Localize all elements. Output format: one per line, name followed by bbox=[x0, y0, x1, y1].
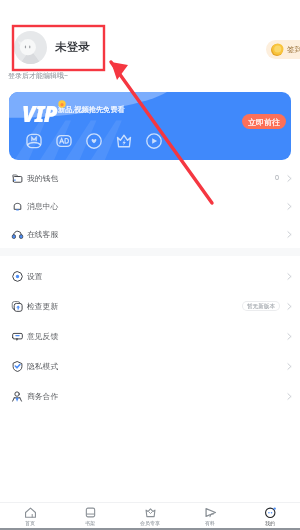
staticText: 我的钱包 bbox=[27, 173, 59, 183]
button[interactable]: 签到 bbox=[266, 40, 300, 59]
staticText: 设置 bbox=[27, 271, 43, 281]
staticText: 消息中心 bbox=[27, 201, 59, 211]
button[interactable]: VIP bbox=[9, 92, 291, 160]
button[interactable]: 立即前往 bbox=[242, 114, 286, 129]
staticText: 首页 bbox=[25, 520, 35, 526]
button[interactable]: 有料 bbox=[180, 503, 240, 528]
staticText: 暂无新版本 bbox=[247, 303, 275, 310]
button[interactable]: VIP benefit 4 bbox=[145, 132, 163, 150]
button[interactable]: 书架 bbox=[60, 503, 120, 528]
button[interactable]: VIP benefit 2 bbox=[85, 132, 103, 150]
staticText: 立即前往 bbox=[248, 117, 280, 127]
staticText: 登录后才能编辑哦~ bbox=[8, 71, 69, 81]
staticText: 检查更新 bbox=[27, 301, 59, 311]
staticText: VIP bbox=[22, 98, 57, 128]
staticText: 新品,视频抢先免费看 bbox=[58, 104, 125, 114]
staticText: 在线客服 bbox=[27, 229, 59, 239]
button[interactable]: 隐私模式 bbox=[0, 351, 300, 381]
staticText: 隐私模式 bbox=[27, 361, 59, 371]
button[interactable]: 在线客服 bbox=[0, 220, 300, 248]
button[interactable]: 设置 bbox=[0, 261, 300, 291]
button[interactable]: VIP benefit 1 bbox=[55, 132, 73, 150]
button[interactable]: 我的 bbox=[240, 503, 300, 528]
button[interactable]: 消息中心 bbox=[0, 192, 300, 220]
staticText: 商务合作 bbox=[27, 391, 59, 401]
button[interactable]: 我的钱包 bbox=[0, 164, 300, 192]
button[interactable]: VIP benefit 0 bbox=[25, 132, 43, 150]
staticText: 0 bbox=[275, 173, 280, 183]
staticText: 签到 bbox=[287, 45, 300, 54]
button[interactable]: 检查更新 bbox=[0, 291, 300, 321]
staticText: 我的 bbox=[265, 520, 275, 526]
button[interactable]: VIP benefit 3 bbox=[115, 132, 133, 150]
button[interactable]: 首页 bbox=[0, 503, 60, 528]
staticText: 意见反馈 bbox=[27, 331, 59, 341]
button[interactable]: 未登录 bbox=[55, 40, 90, 54]
staticText: 会员专享 bbox=[140, 520, 160, 526]
staticText: 有料 bbox=[205, 520, 215, 526]
staticText: 书架 bbox=[85, 520, 95, 526]
button[interactable]: 意见反馈 bbox=[0, 321, 300, 351]
button[interactable]: 会员专享 bbox=[120, 503, 180, 528]
button[interactable]: 商务合作 bbox=[0, 381, 300, 411]
